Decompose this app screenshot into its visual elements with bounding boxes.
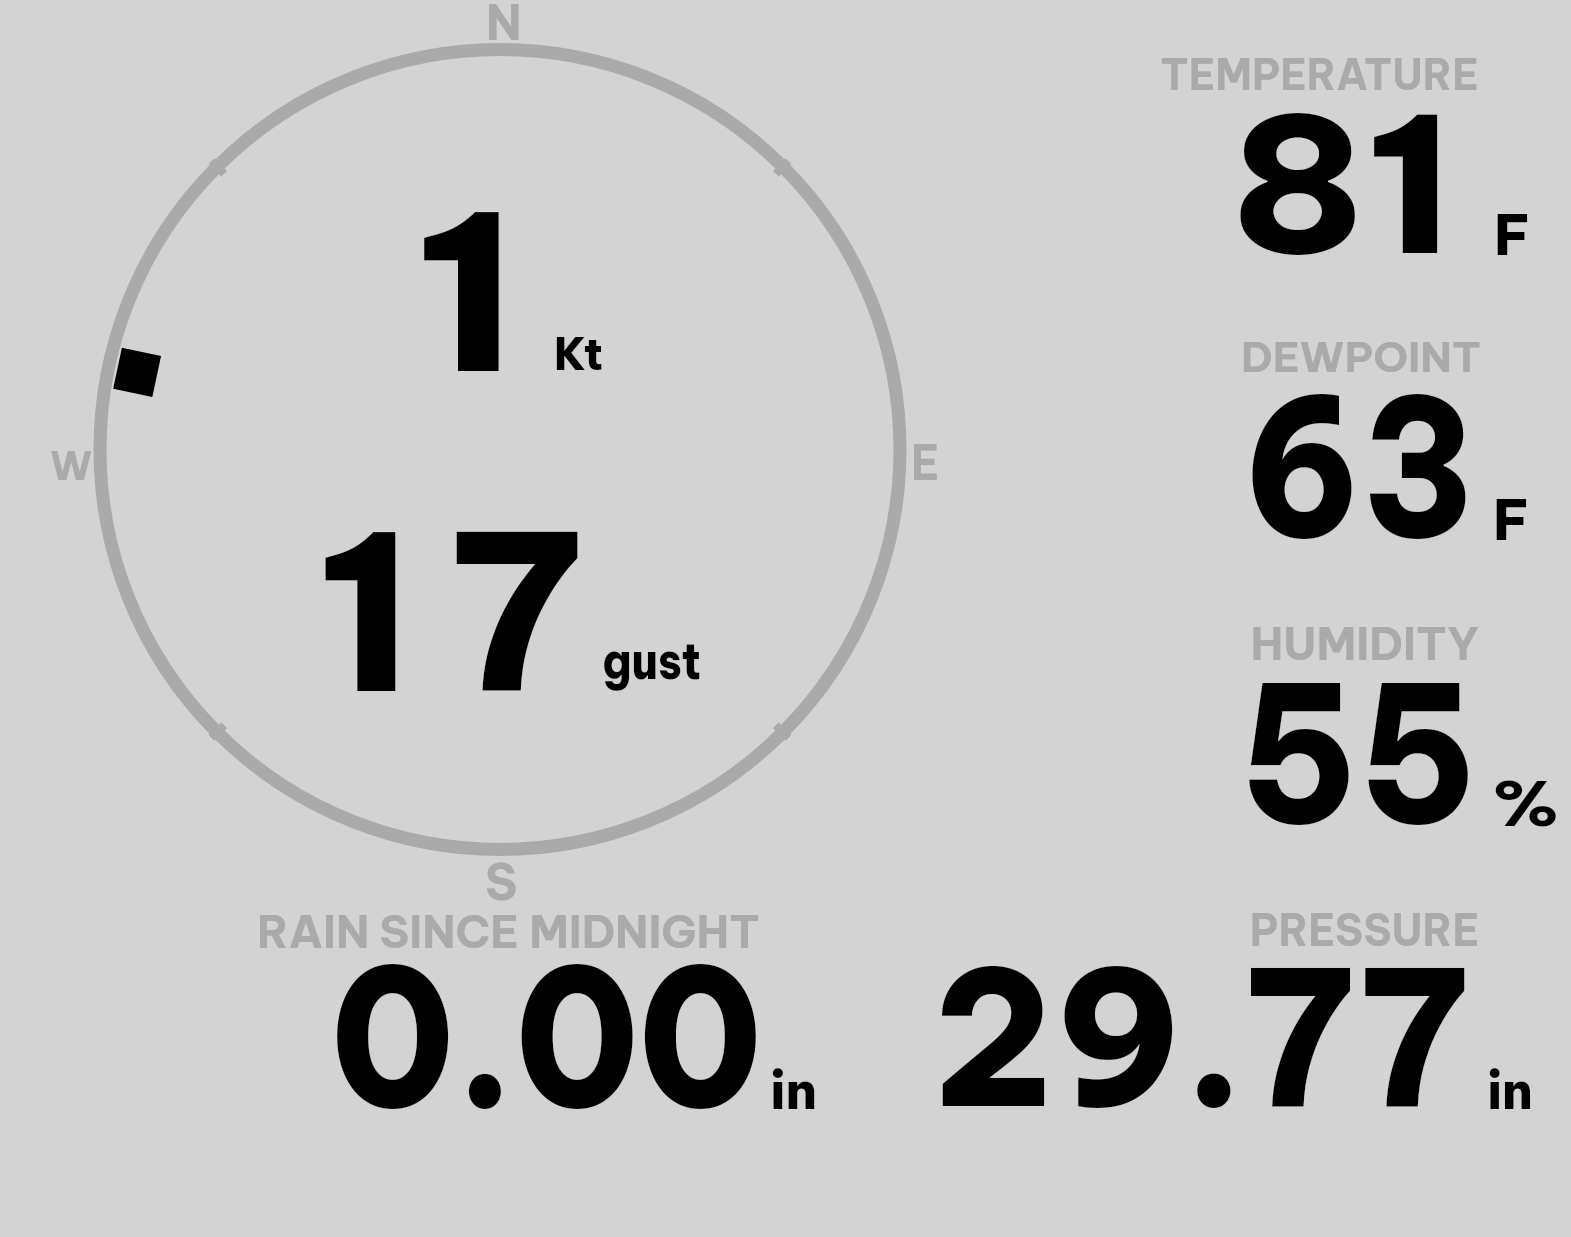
staticText: RAIN SINCE MIDNIGHT	[257, 903, 760, 960]
staticText: HUMIDITY	[1250, 616, 1480, 672]
staticText: 1	[414, 157, 520, 428]
staticText: DEWPOINT	[1241, 331, 1481, 383]
staticText: 81	[1230, 67, 1455, 302]
button[interactable]: Temperature 81 degrees Fahrenheit	[1100, 20, 1560, 270]
staticText: in	[770, 1058, 817, 1123]
button[interactable]: Pressure 29.77 inches of mercury	[900, 895, 1540, 1125]
staticText: E	[911, 432, 939, 493]
staticText: S	[485, 850, 518, 913]
staticText: N	[486, 0, 522, 53]
staticText: TEMPERATURE	[1160, 47, 1479, 101]
staticText: 29.77	[933, 920, 1469, 1155]
staticText: W	[50, 441, 93, 490]
staticText: 55	[1239, 635, 1478, 873]
staticText: 63	[1243, 347, 1475, 587]
button[interactable]: Humidity 55 percent	[1100, 585, 1560, 840]
staticText: PRESSURE	[1250, 902, 1480, 958]
staticText: in	[1487, 1058, 1533, 1123]
staticText: 17	[316, 477, 619, 748]
staticText: F	[1493, 485, 1530, 555]
staticText: Kt	[554, 325, 604, 382]
staticText: F	[1494, 200, 1531, 270]
staticText: 0.00	[331, 916, 762, 1158]
button[interactable]: Rain since midnight 0.00 inches	[200, 895, 840, 1125]
button[interactable]: Wind 1 knots, gusting 17 knots, directio…	[90, 40, 910, 860]
button[interactable]: Dewpoint 63 degrees Fahrenheit	[1100, 300, 1560, 555]
staticText: %	[1492, 765, 1560, 842]
staticText: gust	[602, 628, 702, 693]
